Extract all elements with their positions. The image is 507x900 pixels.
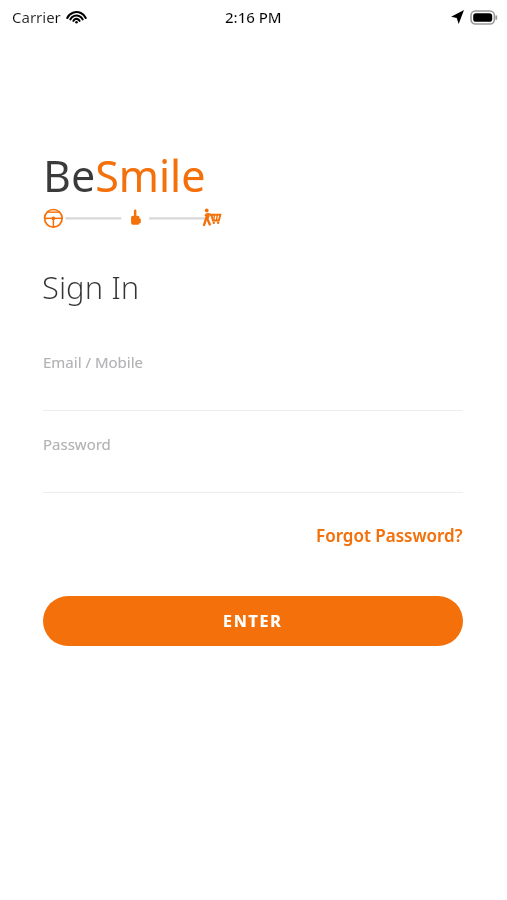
staticText: Sign In — [42, 266, 140, 308]
staticText: ENTER — [223, 610, 283, 632]
staticText: Forgot Password? — [316, 524, 463, 547]
button[interactable]: Forgot Password? — [43, 518, 463, 552]
staticText: Password — [43, 434, 111, 454]
button[interactable]: Password — [43, 434, 463, 493]
staticText: BeSmile — [43, 146, 206, 205]
staticText: Email / Mobile — [43, 352, 144, 372]
staticText: Carrier — [12, 7, 61, 27]
button[interactable]: Email / Mobile — [43, 352, 463, 411]
button[interactable]: ENTER — [43, 596, 463, 646]
staticText: 2:16 PM — [225, 7, 282, 27]
